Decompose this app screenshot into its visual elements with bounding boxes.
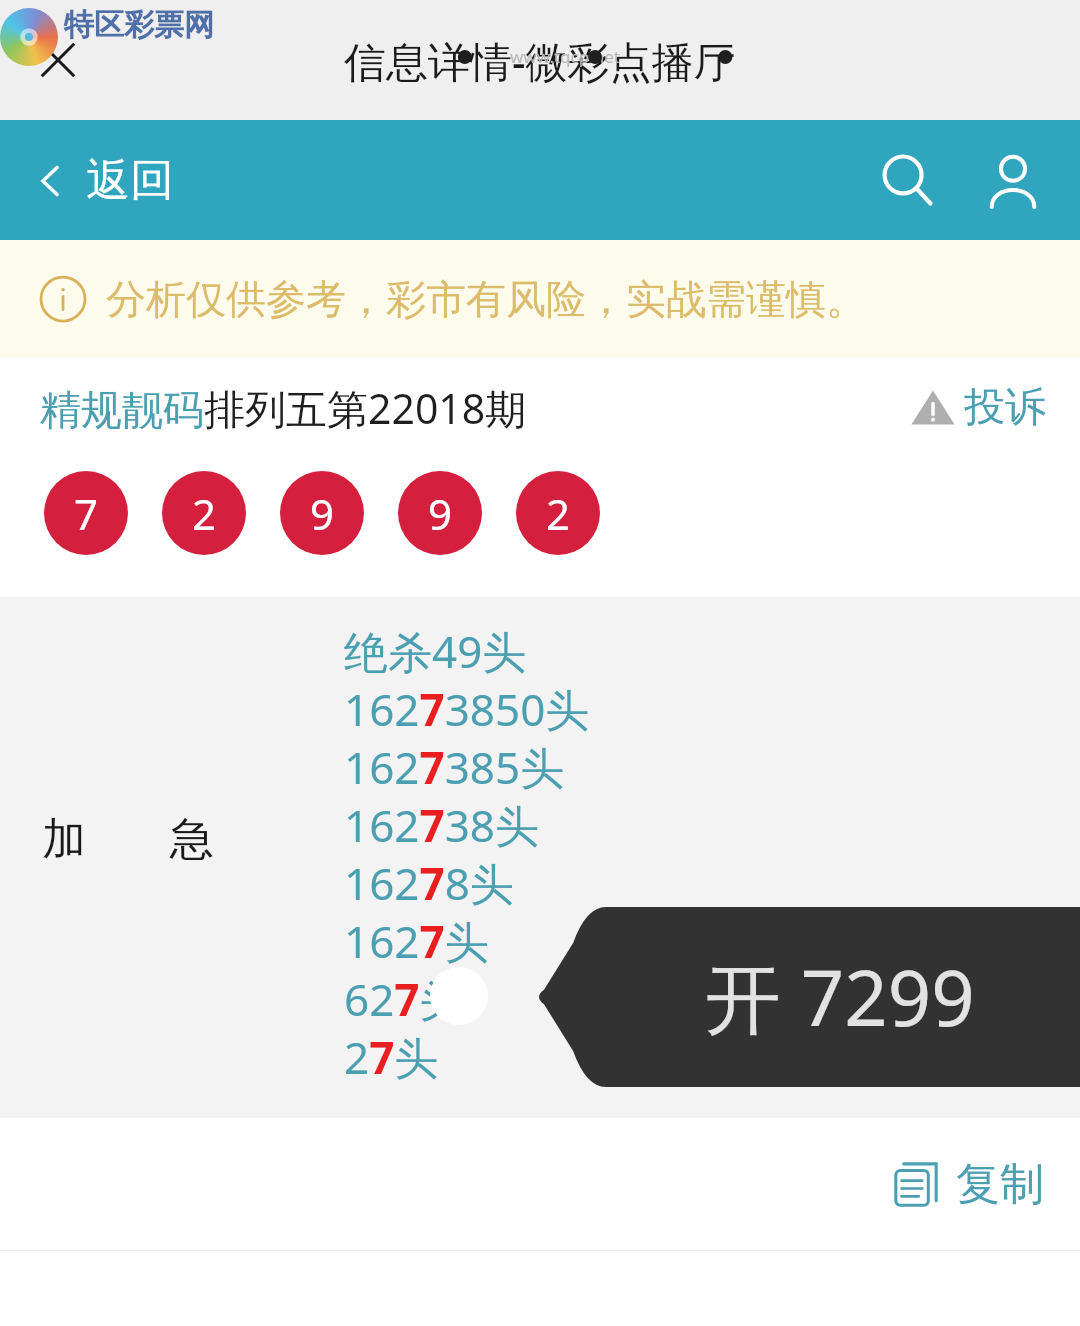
staticText: 急 bbox=[170, 812, 214, 867]
staticText: 1627385头 bbox=[344, 737, 565, 795]
button[interactable]: 返回 bbox=[34, 153, 174, 208]
staticText: 精规靓码排列五第22018期 bbox=[40, 380, 527, 436]
staticText: 9 bbox=[428, 485, 453, 542]
button[interactable]: 复制 bbox=[888, 1156, 1044, 1212]
button[interactable]: Search bbox=[864, 137, 950, 223]
button[interactable]: 开 7299 bbox=[620, 907, 1060, 1087]
staticText: 开 7299 bbox=[705, 945, 975, 1049]
staticText: 2 bbox=[546, 485, 571, 542]
staticText: 2 bbox=[192, 485, 217, 542]
button[interactable]: Close bbox=[20, 22, 96, 98]
staticText: 信息详情-微彩点播厅 bbox=[344, 32, 736, 89]
staticText: 返回 bbox=[86, 153, 174, 208]
staticText: 16278头 bbox=[344, 853, 514, 911]
staticText: 9 bbox=[310, 485, 335, 542]
staticText: 加 bbox=[42, 812, 86, 867]
staticText: 27头 bbox=[344, 1027, 439, 1085]
staticText: 投诉 bbox=[964, 382, 1046, 434]
staticText: 1627头 bbox=[344, 911, 489, 969]
button[interactable]: Account bbox=[970, 137, 1056, 223]
staticText: 分析仅供参考，彩市有风险，实战需谨慎。 bbox=[106, 274, 866, 324]
staticText: 特区彩票网 bbox=[64, 6, 214, 44]
staticText: 绝杀49头 bbox=[344, 621, 527, 679]
staticText: www.tqcp.net bbox=[510, 45, 620, 68]
button[interactable]: 投诉 bbox=[910, 382, 1046, 434]
staticText: 复制 bbox=[956, 1157, 1044, 1212]
staticText: 7 bbox=[74, 485, 99, 542]
staticText: 627头 bbox=[344, 969, 464, 1027]
staticText: 162738头 bbox=[344, 795, 540, 853]
staticText: 16273850头 bbox=[344, 679, 590, 737]
